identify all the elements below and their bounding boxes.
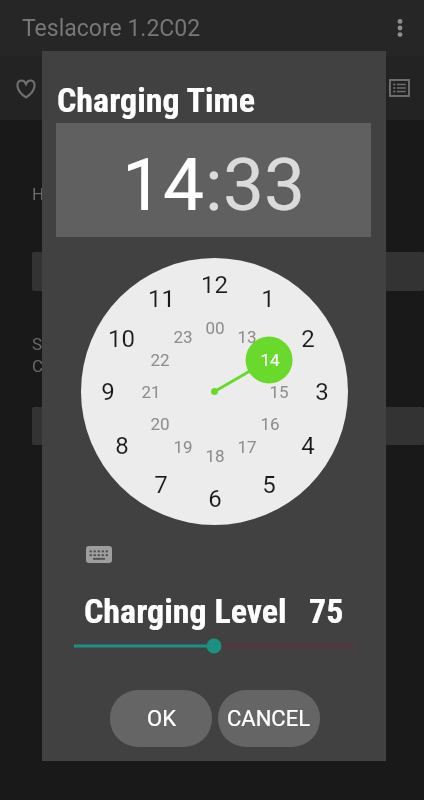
staticText: Cabin Overheat [32,356,148,376]
staticText: 6 [208,485,222,513]
staticText: 1 [261,285,275,313]
staticText: 15 [269,382,289,402]
button[interactable]: OK [110,690,212,747]
button[interactable]: Favorites [2,64,50,112]
staticText: 23 [173,327,193,347]
button[interactable] [81,258,348,525]
button[interactable] [66,631,362,661]
button[interactable]: Switch to keyboard input [75,530,123,578]
staticText: 16 [260,414,280,434]
button[interactable]: 33 [223,142,306,228]
staticText: 8 [115,432,129,460]
button[interactable]: List view [375,64,423,112]
staticText: 75 [309,591,344,631]
staticText: Charging Level [84,591,287,631]
staticText: 12 [201,271,228,299]
staticText: 13 [237,327,257,347]
staticText: Charging Time [57,80,255,120]
button[interactable]: CANCEL [218,690,320,747]
staticText: 5 [262,471,276,499]
staticText: 21 [141,382,161,402]
button[interactable]: 14 [122,142,205,228]
staticText: Headlights [32,184,114,204]
staticText: 20 [150,414,170,434]
staticText: 19 [173,437,193,457]
staticText: 00 [205,318,225,338]
button[interactable] [32,252,424,291]
staticText: 14 [260,350,280,370]
staticText: 22 [150,350,170,370]
staticText: 7 [154,471,168,499]
staticText: 3 [315,378,329,406]
staticText: 4 [301,432,315,460]
staticText: 2 [301,325,315,353]
staticText: Seat Heaters [32,334,130,354]
staticText: 17 [237,437,257,457]
staticText: OK [147,706,176,732]
staticText: : [205,142,223,228]
staticText: 18 [205,446,225,466]
button[interactable] [32,407,424,445]
button[interactable]: More options [376,4,424,52]
staticText: Teslacore 1.2C02 [22,15,201,42]
staticText: CANCEL [227,706,311,732]
staticText: 9 [101,378,115,406]
staticText: 10 [108,325,135,353]
staticText: 11 [148,285,175,313]
